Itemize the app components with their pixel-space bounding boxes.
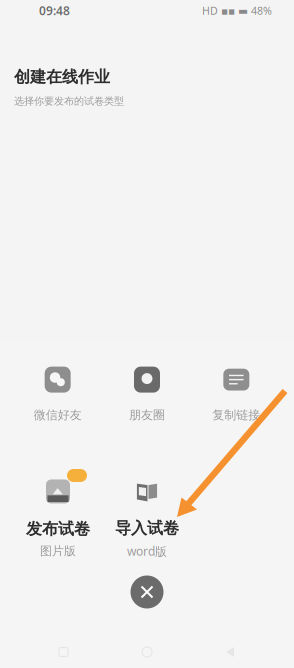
staticText: 朋友圈 <box>129 408 165 422</box>
staticText: HD ▪▪ ▬ 48% <box>202 3 272 18</box>
staticText: 选择你要发布的试卷类型 <box>14 95 124 107</box>
staticText: 09:48 <box>39 2 70 18</box>
staticText: 复制链接 <box>212 408 260 422</box>
staticText: 创建在线作业 <box>14 67 110 87</box>
staticText: 发布试卷 <box>26 519 90 539</box>
button[interactable]: 朋友圈 <box>102 367 192 422</box>
button[interactable]: 发布试卷 <box>13 466 102 558</box>
button[interactable]: 关闭 <box>124 569 170 615</box>
staticText: 图片版 <box>40 544 76 558</box>
staticText: 微信好友 <box>34 408 82 422</box>
staticText: 导入试卷 <box>115 518 179 538</box>
staticText: word版 <box>127 543 167 559</box>
button[interactable]: 导入试卷 <box>102 465 191 559</box>
button[interactable]: 复制链接 <box>192 367 281 422</box>
button[interactable]: 微信好友 <box>13 367 102 422</box>
